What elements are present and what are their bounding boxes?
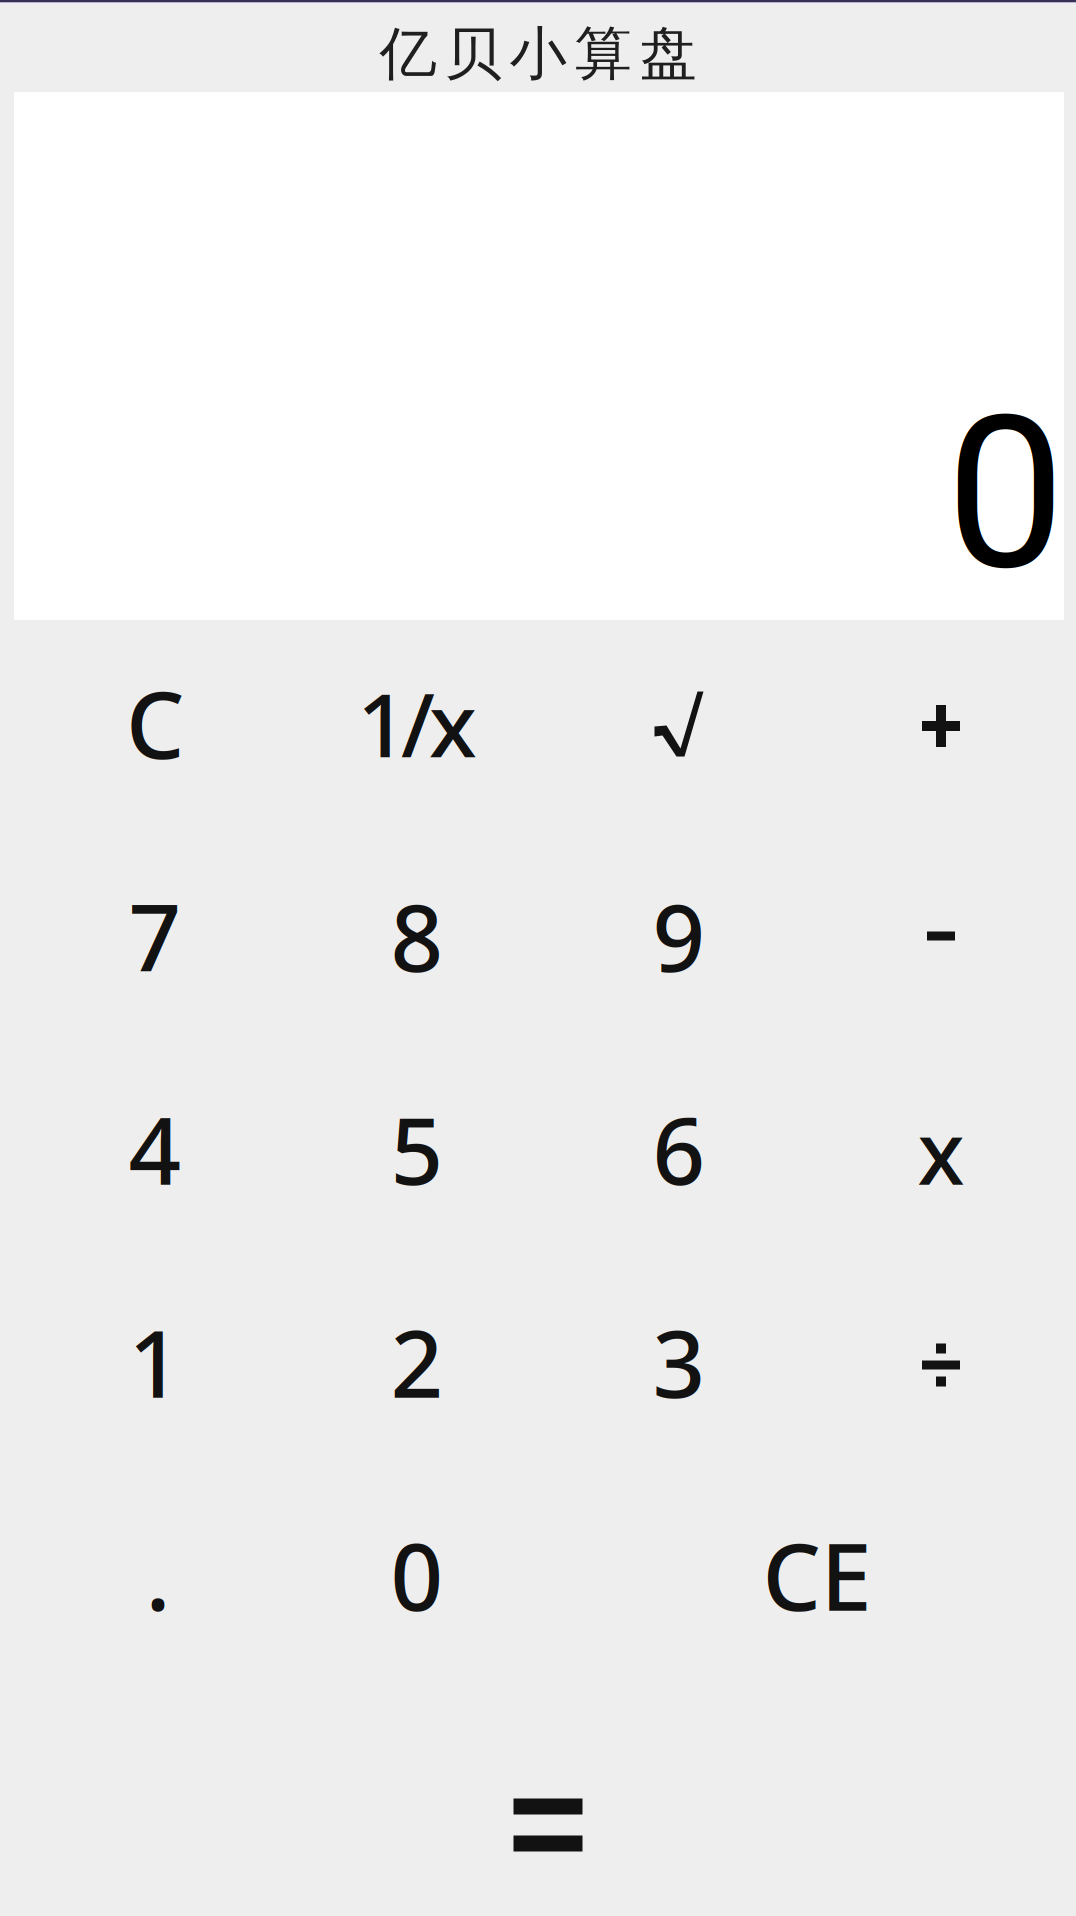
staticText: . (145, 1514, 170, 1636)
staticText: 1 (128, 1301, 181, 1423)
staticText: 亿贝小算盘 (379, 19, 696, 89)
button[interactable]: Plus (810, 619, 1072, 832)
staticText: 2 (390, 1301, 443, 1423)
button[interactable]: 4 (24, 1042, 286, 1255)
staticText: 9 (652, 875, 705, 997)
button[interactable]: 1/x (286, 616, 548, 829)
button[interactable]: 8 (286, 829, 548, 1042)
button[interactable]: 7 (24, 829, 286, 1042)
staticText: 4 (128, 1088, 181, 1210)
staticText: 5 (390, 1088, 443, 1210)
staticText: 1/x (357, 665, 477, 781)
button[interactable]: C (24, 616, 286, 829)
staticText: 0 (390, 1514, 443, 1636)
staticText: 8 (390, 875, 443, 997)
staticText: CE (762, 1514, 871, 1636)
staticText: C (126, 662, 184, 784)
button[interactable]: 9 (548, 829, 810, 1042)
staticText: 3 (652, 1301, 705, 1423)
button[interactable]: 3 (548, 1255, 810, 1468)
button[interactable]: Square root (548, 617, 810, 830)
button[interactable]: 1 (24, 1255, 286, 1468)
staticText: 0 (946, 370, 1065, 618)
button[interactable]: Divide (810, 1258, 1072, 1471)
button[interactable]: 0 (286, 1468, 548, 1681)
button[interactable]: Minus (810, 829, 1072, 1042)
button[interactable]: 5 (286, 1042, 548, 1255)
button[interactable]: . (24, 1468, 286, 1681)
button[interactable]: CE (548, 1468, 1072, 1681)
staticText: x (917, 1093, 964, 1209)
button[interactable]: 2 (286, 1255, 548, 1468)
button[interactable]: Equals (417, 1718, 679, 1916)
staticText: 6 (652, 1088, 705, 1210)
staticText: 7 (128, 875, 181, 997)
button[interactable]: x (810, 1044, 1072, 1257)
button[interactable]: 6 (548, 1042, 810, 1255)
